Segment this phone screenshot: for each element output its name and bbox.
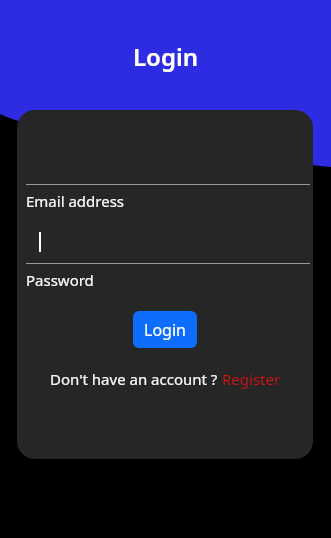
button[interactable]: Login [133,311,197,348]
button[interactable]: Email address [26,191,310,215]
staticText: Don't have an account ? [50,369,222,389]
button[interactable]: Password [26,270,310,294]
staticText: Password [26,270,94,290]
staticText: Login [133,40,199,73]
button[interactable]: Register [222,369,281,389]
staticText: Login [144,319,186,341]
staticText: Email address [26,191,125,211]
